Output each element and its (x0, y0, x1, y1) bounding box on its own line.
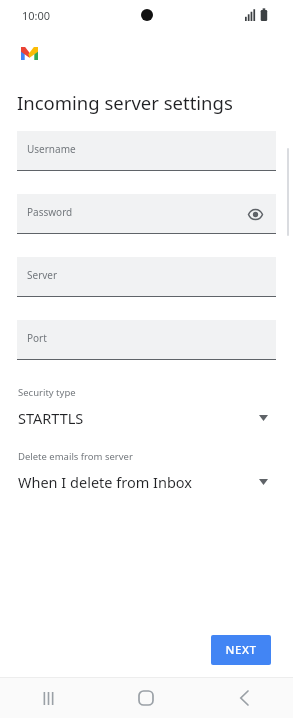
button[interactable]: Recents (0, 678, 97, 718)
staticText: Password (27, 205, 73, 219)
staticText: Delete emails from server (18, 450, 133, 463)
button[interactable]: NEXT (211, 635, 271, 665)
staticText: 10:00 (22, 8, 51, 23)
button[interactable]: Home (97, 678, 195, 718)
button[interactable]: Username (17, 131, 276, 171)
button[interactable]: Delete emails from server (17, 450, 276, 492)
staticText: NEXT (225, 642, 257, 658)
staticText: Security type (18, 386, 76, 399)
button[interactable]: Server (17, 257, 276, 297)
button[interactable]: Security type (17, 386, 276, 428)
button[interactable]: Show password (242, 201, 268, 227)
staticText: Username (27, 142, 76, 156)
staticText: When I delete from Inbox (18, 472, 259, 492)
button[interactable]: Password (17, 194, 276, 234)
staticText: Server (27, 268, 58, 282)
button[interactable]: Port (17, 320, 276, 360)
staticText: STARTTLS (18, 408, 259, 428)
staticText: Incoming server settings (17, 90, 233, 115)
staticText: Port (27, 331, 47, 345)
button[interactable]: Back (195, 678, 293, 718)
